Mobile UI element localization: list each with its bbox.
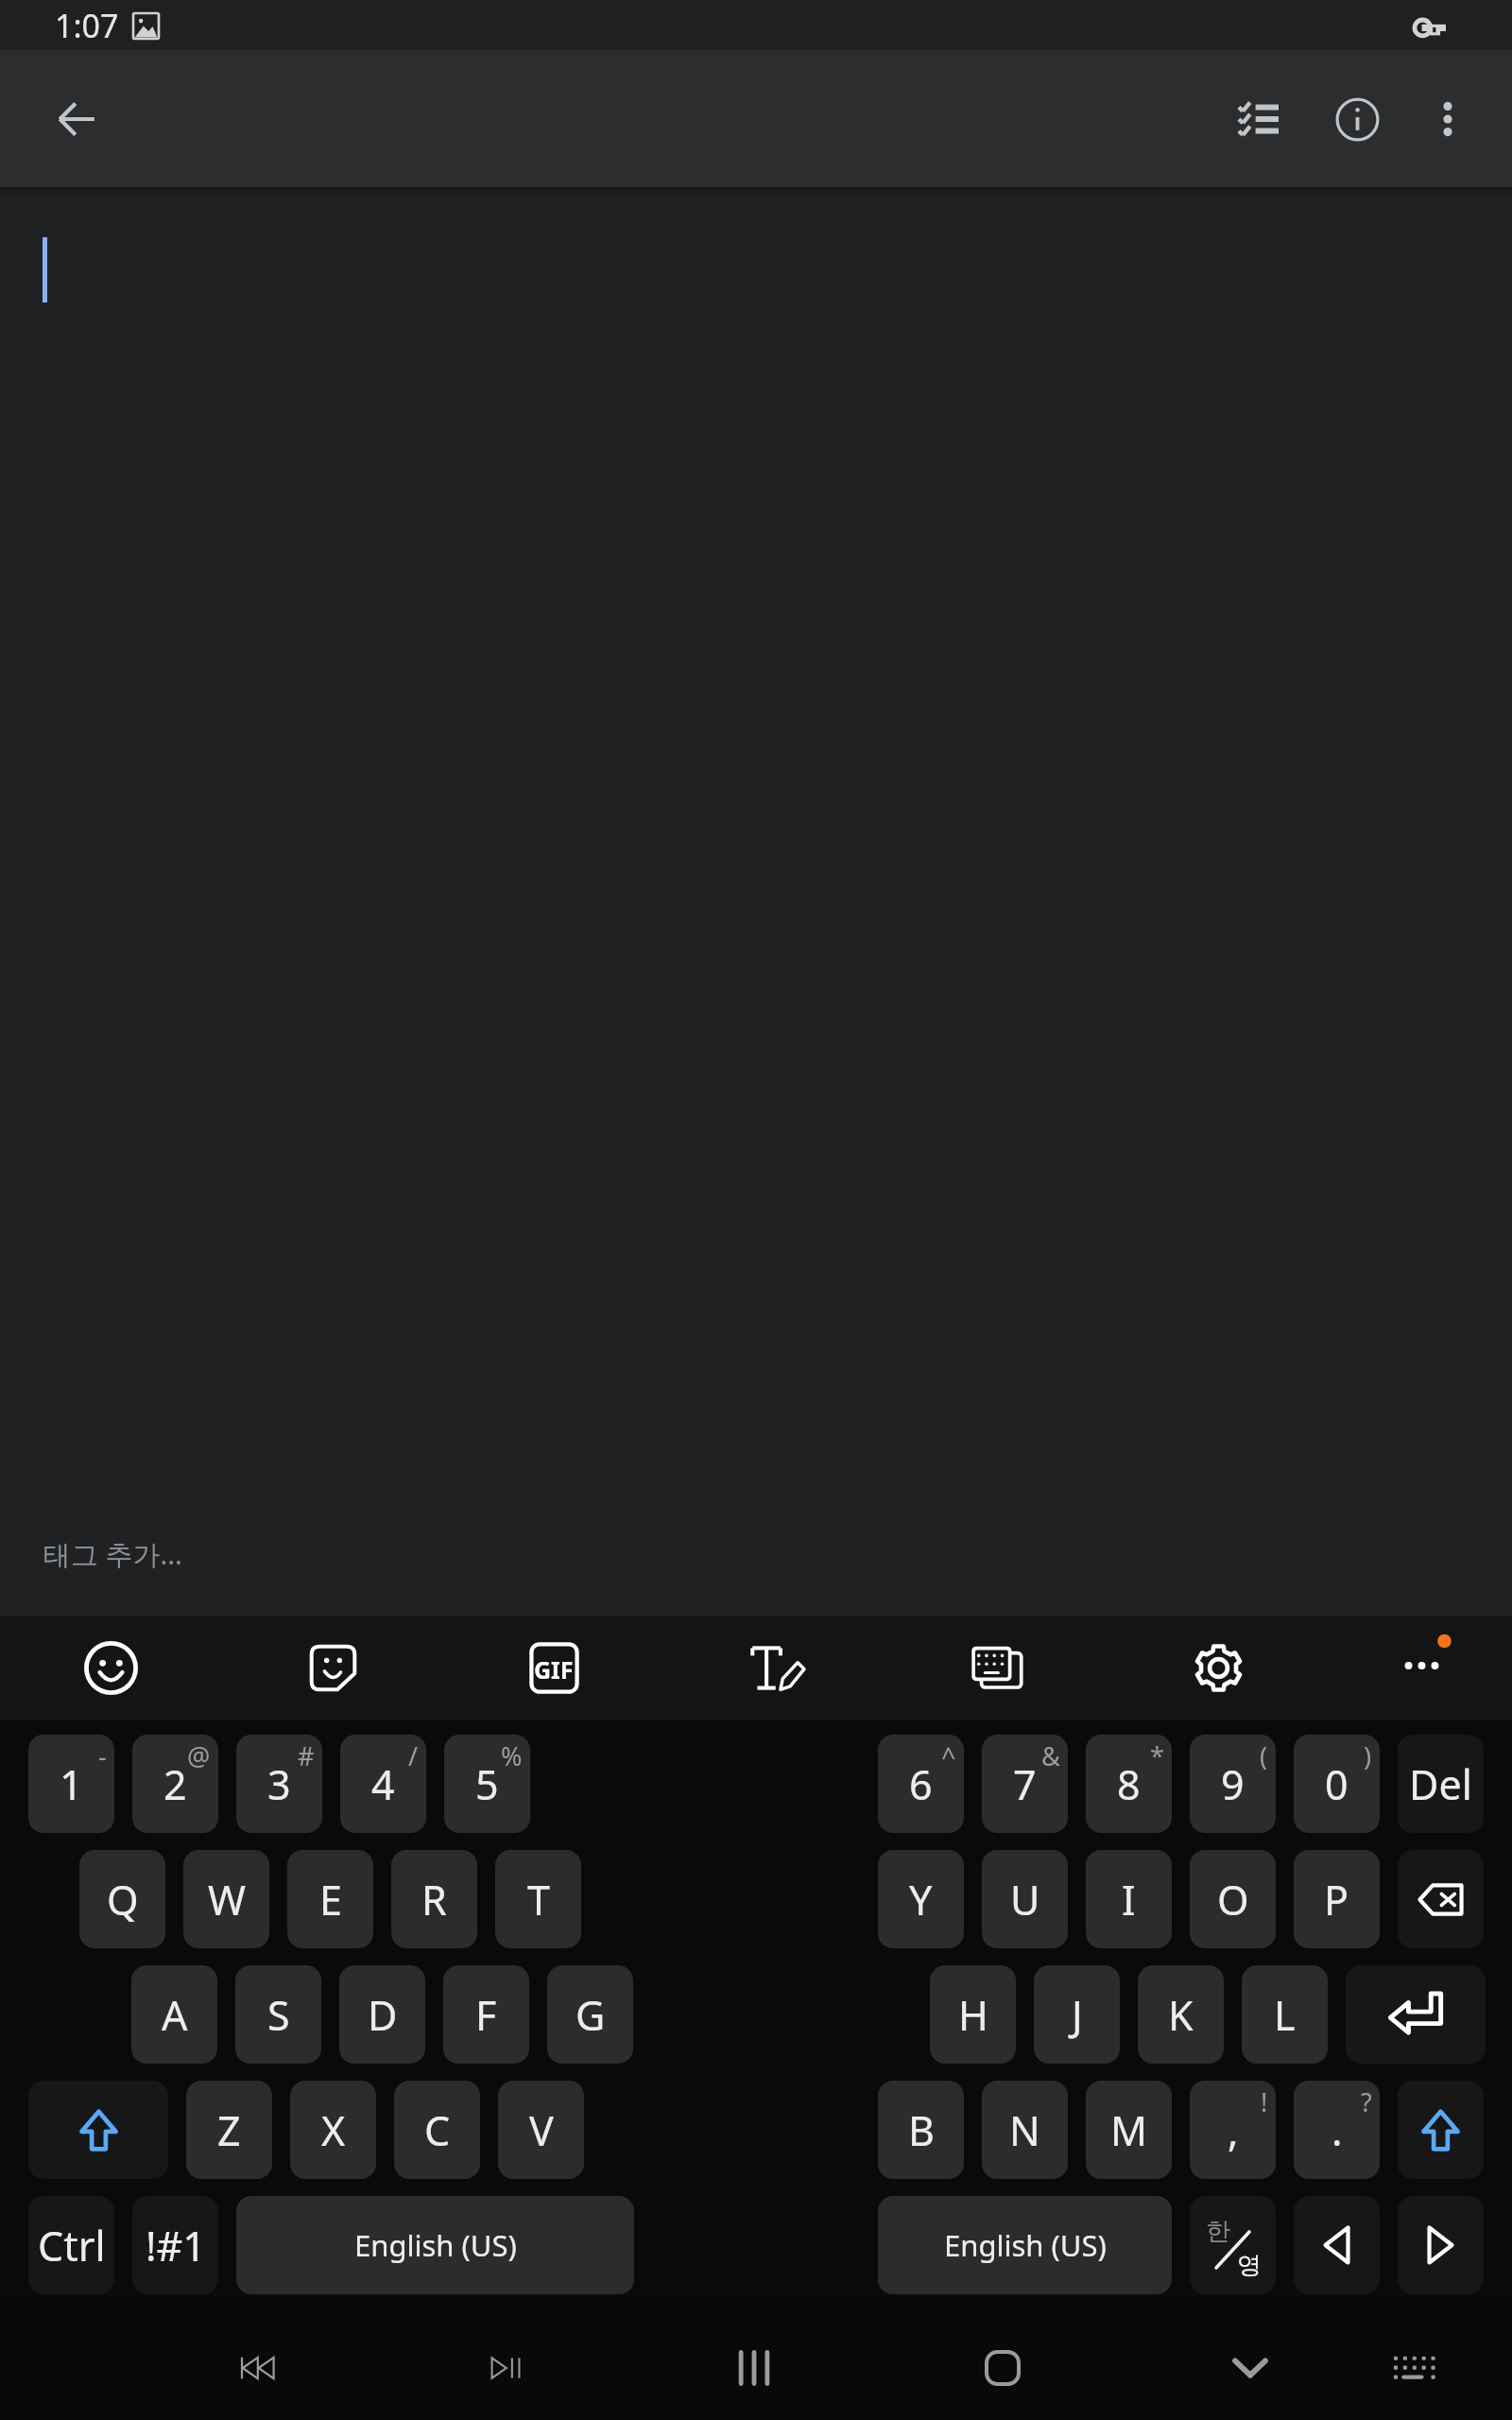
button[interactable]: 1 xyxy=(28,1735,114,1833)
button[interactable]: Del xyxy=(1398,1735,1484,1833)
button[interactable]: 2 xyxy=(132,1735,218,1833)
button[interactable]: D xyxy=(339,1965,425,2064)
button[interactable]: 4 xyxy=(340,1735,426,1833)
staticText: U xyxy=(1010,1872,1040,1927)
button[interactable]: N xyxy=(982,2081,1068,2179)
button[interactable]: J xyxy=(1034,1965,1120,2064)
button[interactable]: Change keyboard xyxy=(1355,2319,1472,2417)
staticText: M xyxy=(1110,2102,1148,2158)
staticText: P xyxy=(1324,1872,1349,1927)
button[interactable]: Backspace xyxy=(1398,1850,1484,1948)
staticText: N xyxy=(1009,2102,1040,2158)
button[interactable]: 7 xyxy=(982,1735,1068,1833)
button[interactable]: Previous track xyxy=(198,2319,316,2417)
button[interactable]: More options xyxy=(1402,74,1493,164)
button[interactable]: 3 xyxy=(236,1735,322,1833)
button[interactable]: Hide keyboard xyxy=(1192,2319,1309,2417)
button[interactable]: Settings xyxy=(1166,1616,1270,1720)
button[interactable]: X xyxy=(290,2081,376,2179)
button[interactable]: English (US) xyxy=(236,2196,634,2294)
button[interactable]: Back xyxy=(31,74,122,164)
button[interactable]: More options xyxy=(1369,1616,1473,1720)
staticText: 7 xyxy=(1013,1756,1037,1812)
button[interactable]: 8 xyxy=(1086,1735,1172,1833)
button[interactable]: , xyxy=(1190,2081,1276,2179)
button[interactable]: O xyxy=(1190,1850,1276,1948)
button[interactable]: 5 xyxy=(444,1735,530,1833)
button[interactable]: M xyxy=(1086,2081,1172,2179)
button[interactable]: C xyxy=(394,2081,480,2179)
staticText: V xyxy=(529,2102,554,2158)
button[interactable]: P xyxy=(1294,1850,1380,1948)
button[interactable]: W xyxy=(183,1850,269,1948)
staticText: ) xyxy=(1364,1738,1372,1773)
button[interactable]: T xyxy=(495,1850,581,1948)
button[interactable]: Z xyxy=(186,2081,272,2179)
staticText: W xyxy=(208,1872,246,1927)
staticText: L xyxy=(1274,1987,1296,2043)
button[interactable]: H xyxy=(930,1965,1016,2064)
button[interactable]: I xyxy=(1086,1850,1172,1948)
staticText: T xyxy=(527,1872,550,1927)
button[interactable]: Shift xyxy=(28,2081,168,2179)
button[interactable]: K xyxy=(1138,1965,1224,2064)
staticText: @ xyxy=(187,1738,211,1773)
button[interactable]: English (US) xyxy=(878,2196,1172,2294)
button[interactable]: . xyxy=(1294,2081,1380,2179)
button[interactable]: Info xyxy=(1312,74,1402,164)
button[interactable]: Ctrl xyxy=(28,2196,114,2294)
staticText: S xyxy=(267,1987,290,2043)
staticText: !#1 xyxy=(146,2218,206,2273)
button[interactable]: Korean English toggle xyxy=(1190,2196,1276,2294)
button[interactable]: 0 xyxy=(1294,1735,1380,1833)
button[interactable]: Q xyxy=(79,1850,165,1948)
button[interactable]: F xyxy=(443,1965,529,2064)
staticText: G xyxy=(576,1987,606,2043)
staticText: C xyxy=(424,2102,451,2158)
button[interactable]: Y xyxy=(878,1850,964,1948)
staticText: ^ xyxy=(941,1738,956,1773)
button[interactable]: L xyxy=(1242,1965,1328,2064)
button[interactable]: S xyxy=(235,1965,321,2064)
staticText: - xyxy=(98,1738,107,1773)
staticText: ! xyxy=(1261,2084,1268,2119)
button[interactable]: Play or pause xyxy=(447,2319,564,2417)
button[interactable]: G xyxy=(547,1965,633,2064)
button[interactable]: Clipboard xyxy=(944,1616,1048,1720)
button[interactable]: 9 xyxy=(1190,1735,1276,1833)
button[interactable]: Shift xyxy=(1398,2081,1484,2179)
button[interactable]: Recent apps xyxy=(696,2319,813,2417)
button[interactable]: V xyxy=(498,2081,584,2179)
button[interactable]: Move cursor left xyxy=(1294,2196,1380,2294)
staticText: , xyxy=(1228,2102,1239,2158)
staticText: Q xyxy=(107,1872,139,1927)
staticText: X xyxy=(321,2102,346,2158)
button[interactable]: Handwriting xyxy=(725,1616,829,1720)
button[interactable]: Checklist xyxy=(1213,74,1304,164)
button[interactable]: B xyxy=(878,2081,964,2179)
staticText: 3 xyxy=(267,1756,291,1812)
button[interactable]: Home xyxy=(944,2319,1061,2417)
button[interactable]: 6 xyxy=(878,1735,964,1833)
button[interactable]: A xyxy=(131,1965,217,2064)
button[interactable]: Emoji xyxy=(59,1616,163,1720)
staticText: J xyxy=(1072,1987,1083,2043)
staticText: Del xyxy=(1409,1756,1472,1812)
staticText: . xyxy=(1332,2102,1343,2158)
button[interactable]: U xyxy=(982,1850,1068,1948)
button[interactable]: Enter xyxy=(1346,1965,1486,2064)
staticText: H xyxy=(958,1987,988,2043)
staticText: ? xyxy=(1361,2084,1372,2119)
button[interactable]: Note body xyxy=(0,187,1512,1616)
button[interactable]: GIF xyxy=(502,1616,606,1720)
staticText: Z xyxy=(217,2102,241,2158)
button[interactable]: E xyxy=(287,1850,373,1948)
staticText: 8 xyxy=(1117,1756,1141,1812)
button[interactable]: !#1 xyxy=(132,2196,218,2294)
staticText: 2 xyxy=(163,1756,187,1812)
staticText: & xyxy=(1041,1738,1060,1773)
button[interactable]: R xyxy=(391,1850,477,1948)
button[interactable]: 태그 추가... xyxy=(0,1511,1512,1601)
button[interactable]: Stickers xyxy=(281,1616,385,1720)
button[interactable]: Move cursor right xyxy=(1398,2196,1484,2294)
